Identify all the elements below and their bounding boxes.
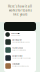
staticText: Design review — [12, 55, 22, 57]
button[interactable]: Design review — [4, 54, 36, 62]
staticText: Morning brief — [12, 39, 21, 41]
staticText: Updated two minutes ago by — [12, 41, 30, 43]
staticText: Daily sync at nine thirty — [12, 49, 26, 51]
staticText: Draft saved on this device — [12, 65, 29, 67]
button[interactable]: Avery Collins — [4, 31, 36, 38]
button[interactable]: Team standup — [4, 46, 36, 54]
staticText: works for teams — [8, 9, 31, 12]
staticText: Shipping list — [12, 63, 20, 65]
staticText: 2 hours ago — [11, 35, 20, 36]
staticText: Avery Collins — [11, 33, 20, 34]
button[interactable]: Shipping list — [4, 62, 36, 70]
staticText: Here's how it all — [8, 5, 32, 8]
staticText: Yesterday afternoon notes — [12, 57, 31, 59]
staticText: Team standup — [12, 47, 23, 49]
button[interactable]: Morning brief — [4, 38, 36, 46]
staticText: like yours — [13, 13, 27, 16]
